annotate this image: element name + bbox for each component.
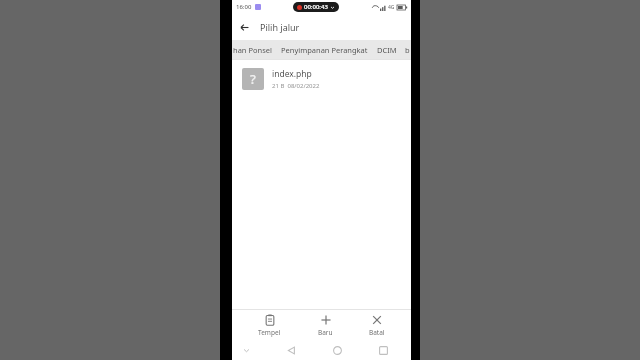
staticText: Tempel	[258, 328, 281, 337]
button[interactable]: Tempel	[248, 312, 291, 339]
staticText: DCIM	[377, 45, 397, 55]
staticText: 16:00	[236, 3, 252, 11]
staticText: index.php	[272, 68, 312, 80]
button[interactable]: Recents	[373, 340, 393, 360]
staticText: han Ponsel	[233, 45, 272, 55]
button[interactable]: Home	[327, 340, 347, 360]
button[interactable]: bikinwe	[405, 45, 411, 55]
button[interactable]: Hide	[238, 342, 254, 358]
staticText: bikinwe	[405, 45, 411, 55]
button[interactable]: han Ponsel	[233, 45, 272, 55]
button[interactable]: ?	[232, 60, 411, 98]
staticText: 4G	[388, 4, 395, 11]
button[interactable]: Batal	[359, 312, 395, 339]
button[interactable]: Back	[232, 15, 256, 39]
button[interactable]: Back	[281, 340, 301, 360]
button[interactable]: Penyimpanan Perangkat	[281, 45, 368, 55]
staticText: Baru	[318, 328, 333, 337]
staticText: ?	[250, 70, 256, 88]
button[interactable]: DCIM	[377, 45, 397, 55]
button[interactable]: Recording timer	[297, 3, 335, 11]
staticText: Penyimpanan Perangkat	[281, 45, 368, 55]
staticText: 21 B 08/02/2022	[272, 82, 320, 90]
staticText: Pilih jalur	[260, 21, 300, 33]
button[interactable]: Baru	[308, 312, 343, 339]
staticText: Batal	[369, 328, 385, 337]
staticText: 00:00:43	[304, 3, 328, 11]
